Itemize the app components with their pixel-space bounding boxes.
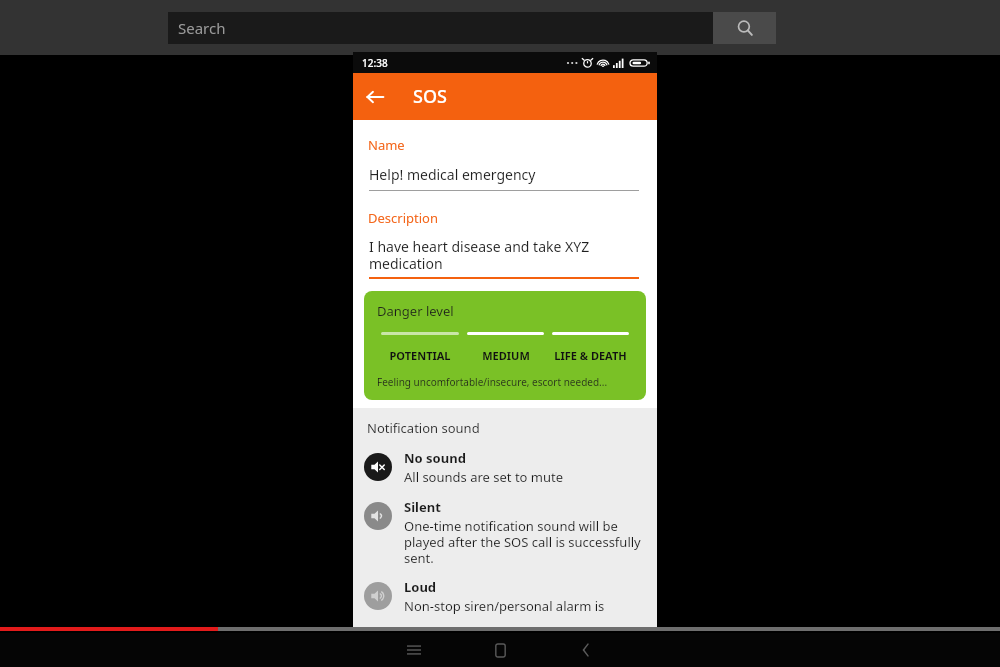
button[interactable]: Back — [353, 75, 397, 119]
staticText: All sounds are set to mute — [404, 468, 564, 486]
button[interactable]: Loud — [353, 576, 657, 615]
staticText: Feeling uncomfortable/insecure, escort n… — [377, 375, 608, 389]
button[interactable]: Search — [168, 12, 713, 44]
button[interactable]: MEDIUM — [463, 332, 548, 363]
button[interactable]: Danger level — [364, 291, 646, 400]
button[interactable]: Silent — [353, 496, 657, 566]
staticText: No sound — [404, 449, 466, 467]
staticText: Danger level — [377, 302, 454, 320]
button[interactable]: POTENTIAL — [377, 332, 463, 363]
staticText: Help! medical emergency — [369, 165, 536, 184]
staticText: MEDIUM — [482, 348, 530, 363]
staticText: LIFE & DEATH — [554, 348, 627, 363]
button[interactable]: LIFE & DEATH — [548, 332, 633, 363]
button[interactable]: Menu — [390, 633, 438, 667]
staticText: Description — [368, 209, 438, 227]
button[interactable]: Home — [476, 633, 524, 667]
staticText: 12:38 — [362, 56, 388, 70]
staticText: Loud — [404, 578, 437, 596]
staticText: Notification sound — [367, 419, 480, 437]
staticText: Name — [368, 136, 405, 154]
staticText: POTENTIAL — [389, 348, 451, 363]
staticText: SOS — [413, 84, 447, 109]
button[interactable]: Search — [713, 12, 776, 44]
button[interactable]: I have heart disease and take XYZ medica… — [369, 237, 639, 279]
staticText: Non-stop siren/personal alarm is — [404, 597, 605, 615]
staticText: Silent — [404, 498, 441, 516]
button[interactable]: Back — [562, 633, 610, 667]
button[interactable]: Help! medical emergency — [369, 165, 639, 191]
staticText: I have heart disease and take XYZ medica… — [369, 237, 639, 273]
staticText: Search — [178, 18, 226, 38]
staticText: One-time notification sound will be play… — [404, 517, 646, 566]
button[interactable]: No sound — [353, 447, 657, 486]
